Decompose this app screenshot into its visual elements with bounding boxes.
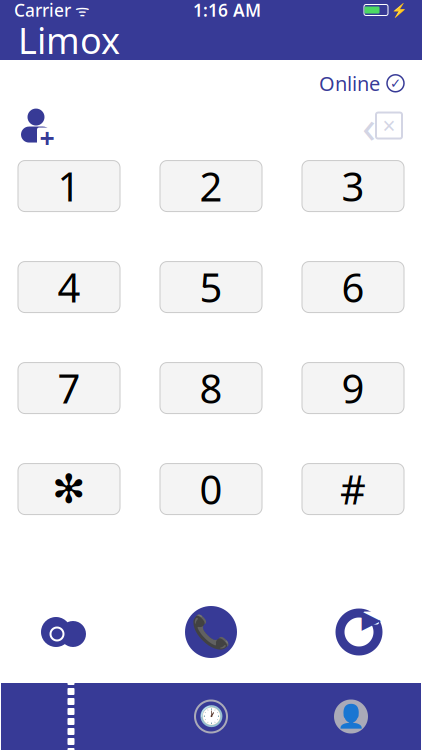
button[interactable]: 4: [18, 262, 120, 313]
staticText: 🕐: [198, 705, 223, 728]
button[interactable]: 1: [18, 161, 120, 212]
staticText: ⚡: [391, 2, 408, 18]
staticText: 👤: [337, 704, 365, 729]
button[interactable]: 0: [160, 464, 262, 515]
staticText: ▶: [361, 605, 380, 633]
staticText: 7: [57, 361, 80, 415]
staticText: Carrier: [14, 0, 71, 21]
staticText: 5: [199, 260, 222, 314]
staticText: 1: [57, 159, 80, 213]
button[interactable]: 5: [160, 262, 262, 313]
staticText: 2: [199, 159, 222, 213]
staticText: #: [340, 462, 366, 516]
button[interactable]: 2: [160, 161, 262, 212]
staticText: 1:16 AM: [193, 0, 261, 21]
button[interactable]: 9: [302, 363, 404, 414]
staticText: 📞: [191, 614, 231, 650]
button[interactable]: Redial: [324, 605, 394, 659]
button[interactable]: Recents: [141, 683, 281, 750]
button[interactable]: Keypad: [1, 683, 141, 750]
staticText: ×: [382, 110, 395, 141]
button[interactable]: 8: [160, 363, 262, 414]
button[interactable]: ✻: [18, 464, 120, 515]
staticText: ‹: [362, 95, 376, 156]
staticText: 3: [341, 159, 364, 213]
staticText: 8: [199, 361, 222, 415]
staticText: Limox: [18, 16, 120, 64]
button[interactable]: Add contact: [0, 104, 58, 148]
button[interactable]: Delete: [358, 109, 422, 143]
staticText: ✓: [390, 76, 401, 91]
staticText: ✻: [52, 466, 86, 512]
staticText: ᯤ: [71, 0, 90, 21]
button[interactable]: Contacts: [281, 683, 421, 750]
button[interactable]: #: [302, 464, 404, 515]
staticText: 4: [57, 260, 80, 314]
staticText: Online: [319, 70, 380, 97]
button[interactable]: 3: [302, 161, 404, 212]
staticText: +: [39, 120, 54, 155]
button[interactable]: Call: [185, 606, 237, 658]
button[interactable]: 6: [302, 262, 404, 313]
button[interactable]: Video call: [28, 605, 98, 659]
staticText: 9: [341, 361, 364, 415]
staticText: 0: [199, 462, 222, 516]
button[interactable]: 7: [18, 363, 120, 414]
button[interactable]: Online: [0, 60, 422, 97]
staticText: 6: [341, 260, 364, 314]
